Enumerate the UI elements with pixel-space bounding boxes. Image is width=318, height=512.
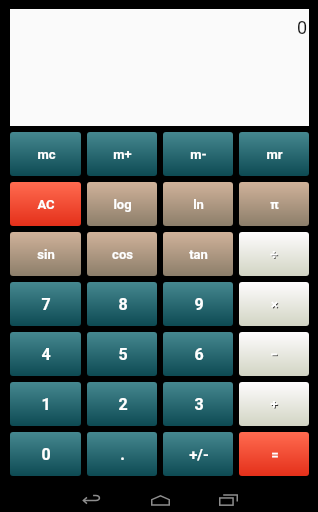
staticText: ÷ — [271, 248, 279, 263]
staticText: 1 — [41, 395, 51, 414]
staticText: 6 — [194, 345, 204, 364]
staticText: . — [120, 445, 125, 464]
staticText: cos — [112, 247, 133, 262]
staticText: 5 — [118, 345, 128, 364]
staticText: × — [271, 297, 278, 312]
staticText: 7 — [41, 295, 51, 314]
staticText: 4 — [41, 345, 51, 364]
staticText: cos — [112, 247, 133, 262]
button[interactable]: 9 — [163, 282, 233, 326]
staticText: 3 — [194, 395, 204, 414]
staticText: 0 — [41, 445, 51, 464]
button[interactable]: Back — [75, 488, 109, 512]
staticText: mr — [266, 147, 283, 162]
staticText: ÷ — [270, 247, 278, 262]
button[interactable]: 7 — [10, 282, 81, 326]
staticText: π — [270, 197, 279, 212]
staticText: m+ — [113, 147, 132, 162]
staticText: + — [270, 397, 278, 412]
staticText: ln — [193, 197, 204, 212]
button[interactable]: π — [239, 182, 309, 226]
button[interactable]: 8 — [87, 282, 157, 326]
staticText: 9 — [194, 295, 204, 314]
staticText: AC — [37, 197, 55, 212]
staticText: 0 — [41, 445, 51, 464]
button[interactable]: AC — [10, 182, 81, 226]
staticText: m- — [190, 147, 207, 162]
button[interactable]: 0 — [10, 432, 81, 476]
staticText: tan — [189, 247, 208, 262]
button[interactable]: log — [87, 182, 157, 226]
staticText: 8 — [118, 295, 128, 314]
button[interactable]: Home — [143, 488, 177, 512]
staticText: = — [271, 447, 279, 462]
button[interactable]: − — [239, 332, 309, 376]
button[interactable]: mc — [10, 132, 81, 176]
staticText: ln — [193, 197, 204, 212]
button[interactable]: 2 — [87, 382, 157, 426]
button[interactable]: ÷ — [239, 232, 309, 276]
staticText: 0 — [297, 17, 308, 38]
staticText: mc — [37, 147, 56, 162]
button[interactable]: = — [239, 432, 309, 476]
staticText: 2 — [118, 395, 128, 414]
button[interactable]: sin — [10, 232, 81, 276]
staticText: 4 — [41, 345, 51, 364]
staticText: mr — [266, 147, 283, 162]
button[interactable]: 4 — [10, 332, 81, 376]
button[interactable]: cos — [87, 232, 157, 276]
button[interactable]: . — [87, 432, 157, 476]
button[interactable]: tan — [163, 232, 233, 276]
button[interactable]: 1 — [10, 382, 81, 426]
staticText: +/- — [189, 446, 209, 464]
staticText: 9 — [194, 295, 204, 314]
staticText: mc — [37, 147, 56, 162]
staticText: 5 — [118, 345, 128, 364]
staticText: AC — [37, 197, 55, 212]
staticText: 8 — [118, 295, 128, 314]
staticText: sin — [37, 247, 55, 262]
button[interactable]: m- — [163, 132, 233, 176]
button[interactable]: +/- — [163, 432, 233, 476]
button[interactable]: m+ — [87, 132, 157, 176]
button[interactable]: + — [239, 382, 309, 426]
staticText: 6 — [194, 345, 204, 364]
button[interactable]: Recents — [211, 488, 245, 512]
staticText: 1 — [41, 395, 51, 414]
staticText: − — [271, 348, 279, 363]
staticText: × — [272, 298, 279, 313]
staticText: − — [270, 347, 278, 362]
staticText: log — [113, 197, 132, 212]
staticText: = — [271, 447, 279, 462]
button[interactable]: × — [239, 282, 309, 326]
staticText: tan — [189, 247, 208, 262]
staticText: 7 — [41, 295, 51, 314]
button[interactable]: mr — [239, 132, 309, 176]
staticText: +/- — [189, 446, 209, 464]
staticText: + — [271, 398, 279, 413]
staticText: m+ — [113, 147, 132, 162]
staticText: m- — [190, 147, 207, 162]
staticText: . — [120, 445, 125, 464]
staticText: π — [270, 197, 279, 212]
button[interactable]: 6 — [163, 332, 233, 376]
button[interactable]: ln — [163, 182, 233, 226]
button[interactable]: 5 — [87, 332, 157, 376]
staticText: 2 — [118, 395, 128, 414]
staticText: log — [113, 197, 132, 212]
staticText: 3 — [194, 395, 204, 414]
button[interactable]: 3 — [163, 382, 233, 426]
staticText: sin — [37, 247, 55, 262]
